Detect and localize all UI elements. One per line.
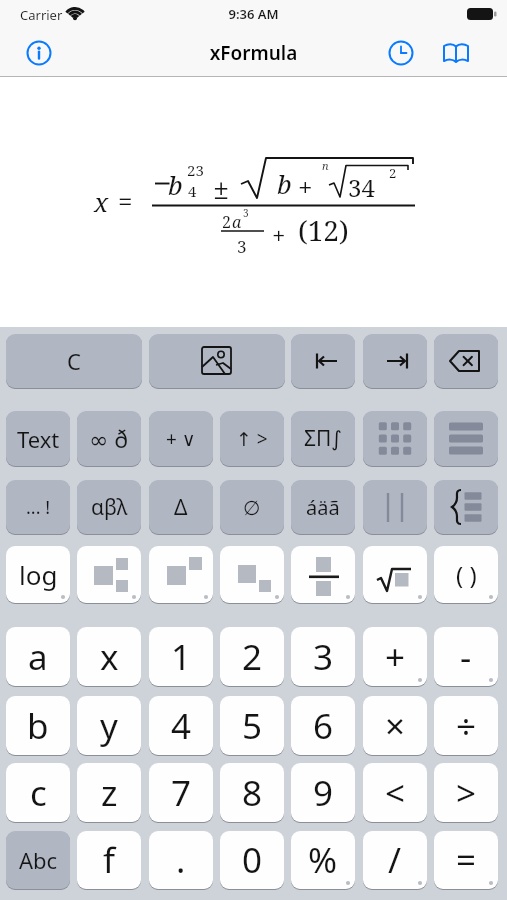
button[interactable]: ... !: [6, 480, 70, 534]
button[interactable]: [149, 546, 213, 603]
staticText: =: [456, 836, 477, 884]
button[interactable]: 0: [220, 831, 284, 889]
staticText: 9:36 AM: [0, 5, 507, 23]
button[interactable]: ΣΠ∫: [291, 411, 355, 466]
staticText: 6: [313, 702, 334, 750]
staticText: >: [456, 769, 477, 817]
staticText: + ∨: [166, 426, 196, 452]
staticText: z: [101, 769, 118, 817]
button[interactable]: [363, 546, 427, 603]
button[interactable]: log: [6, 546, 70, 603]
staticText: 3: [243, 206, 249, 220]
staticText: b: [277, 166, 292, 201]
button[interactable]: c: [6, 763, 70, 822]
button[interactable]: [77, 546, 141, 603]
staticText: ΣΠ∫: [304, 424, 343, 453]
button[interactable]: ( ): [434, 546, 498, 603]
staticText: 8: [242, 769, 263, 817]
button[interactable]: [434, 480, 498, 534]
staticText: =: [118, 183, 133, 218]
staticText: 3: [313, 633, 334, 681]
button[interactable]: 4: [149, 696, 213, 755]
staticText: .: [176, 836, 186, 884]
staticText: ↑ >: [236, 426, 268, 452]
staticText: Carrier: [20, 6, 63, 24]
button[interactable]: -: [434, 627, 498, 686]
staticText: +: [298, 169, 313, 204]
staticText: ... !: [26, 495, 50, 520]
button[interactable]: áäã: [291, 480, 355, 534]
button[interactable]: [363, 480, 427, 534]
staticText: c: [30, 769, 47, 817]
button[interactable]: Δ: [149, 480, 213, 534]
button[interactable]: 3: [291, 627, 355, 686]
staticText: (12): [298, 211, 349, 249]
staticText: ±: [213, 168, 230, 207]
button[interactable]: [363, 411, 427, 466]
staticText: ×: [385, 702, 406, 750]
button[interactable]: a: [6, 627, 70, 686]
staticText: áäã: [306, 494, 340, 521]
button[interactable]: y: [77, 696, 141, 755]
staticText: 2: [242, 633, 263, 681]
staticText: 0: [242, 836, 263, 884]
button[interactable]: 1: [149, 627, 213, 686]
button[interactable]: <: [363, 763, 427, 822]
button[interactable]: [220, 546, 284, 603]
button[interactable]: [386, 38, 416, 68]
staticText: 4: [171, 702, 192, 750]
button[interactable]: 5: [220, 696, 284, 755]
button[interactable]: [291, 546, 355, 603]
button[interactable]: [291, 334, 355, 388]
staticText: a: [232, 211, 242, 233]
staticText: x: [100, 633, 119, 681]
staticText: 34: [348, 171, 375, 204]
button[interactable]: z: [77, 763, 141, 822]
button[interactable]: 7: [149, 763, 213, 822]
button[interactable]: [441, 38, 471, 68]
button[interactable]: αβλ: [77, 480, 141, 534]
button[interactable]: b: [6, 696, 70, 755]
staticText: αβλ: [91, 493, 128, 522]
button[interactable]: [434, 334, 498, 388]
staticText: n: [322, 158, 329, 173]
staticText: 2: [222, 211, 231, 233]
staticText: x: [94, 184, 109, 219]
button[interactable]: 9: [291, 763, 355, 822]
staticText: b: [27, 702, 49, 750]
button[interactable]: [363, 334, 427, 388]
button[interactable]: 2: [220, 627, 284, 686]
button[interactable]: ÷: [434, 696, 498, 755]
staticText: a: [28, 633, 48, 681]
button[interactable]: =: [434, 831, 498, 889]
button[interactable]: %: [291, 831, 355, 889]
staticText: 4: [188, 181, 197, 201]
staticText: 23: [187, 160, 204, 180]
button[interactable]: ×: [363, 696, 427, 755]
staticText: Δ: [174, 493, 188, 522]
button[interactable]: ↑ >: [220, 411, 284, 466]
staticText: ∞ ð: [89, 423, 129, 454]
button[interactable]: [434, 411, 498, 466]
staticText: 2: [389, 164, 397, 182]
staticText: ÷: [456, 702, 477, 750]
button[interactable]: f: [77, 831, 141, 889]
button[interactable]: .: [149, 831, 213, 889]
button[interactable]: x: [77, 627, 141, 686]
button[interactable]: Abc: [6, 831, 70, 889]
button[interactable]: ∞ ð: [77, 411, 141, 466]
button[interactable]: [24, 38, 54, 68]
button[interactable]: 8: [220, 763, 284, 822]
button[interactable]: 6: [291, 696, 355, 755]
button[interactable]: >: [434, 763, 498, 822]
button[interactable]: + ∨: [149, 411, 213, 466]
staticText: 5: [242, 702, 263, 750]
button[interactable]: [149, 334, 285, 388]
button[interactable]: C: [6, 334, 142, 388]
button[interactable]: Text: [6, 411, 70, 466]
button[interactable]: /: [363, 831, 427, 889]
staticText: 7: [171, 769, 192, 817]
button[interactable]: ∅: [220, 480, 284, 534]
button[interactable]: +: [363, 627, 427, 686]
staticText: 3: [237, 235, 247, 258]
